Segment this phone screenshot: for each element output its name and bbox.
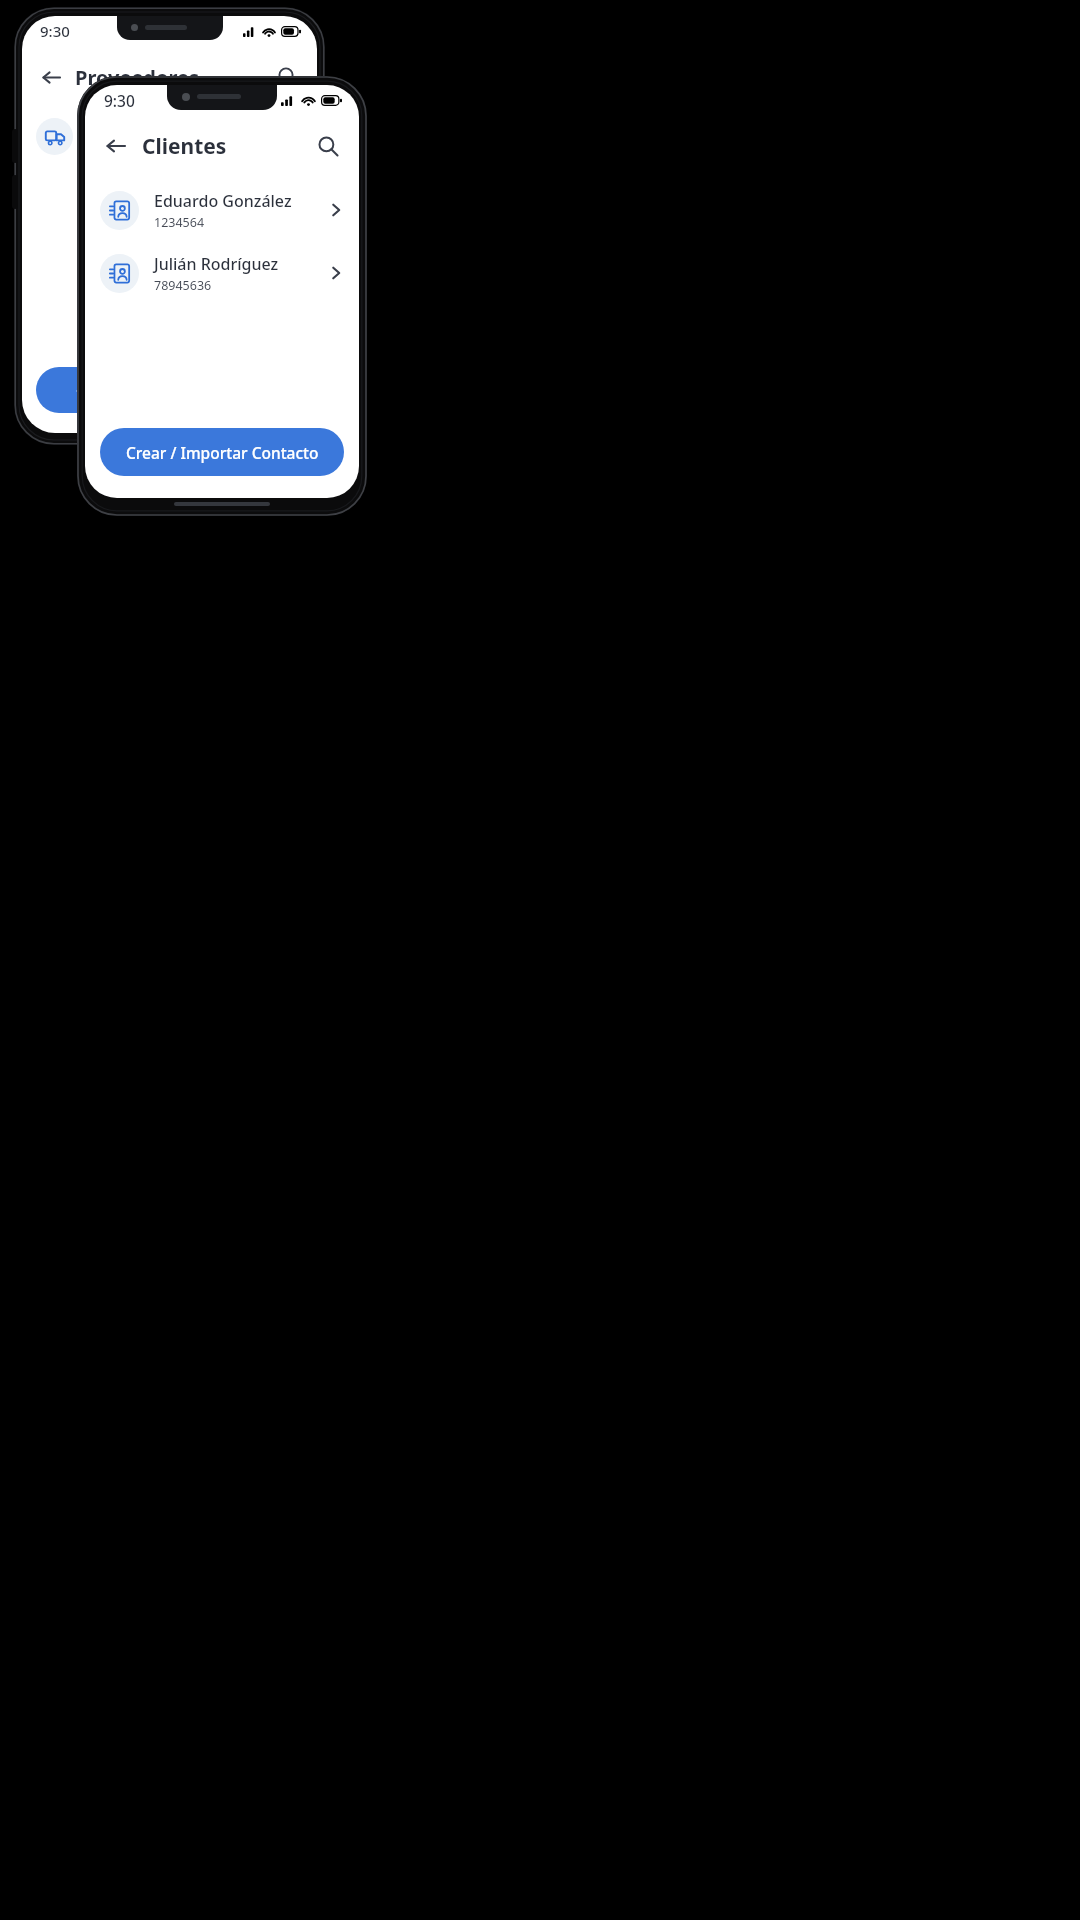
button[interactable]: Search bbox=[273, 62, 303, 92]
staticText: Proveedores bbox=[75, 64, 200, 91]
staticText: 9:30 bbox=[40, 21, 70, 41]
button[interactable]: Eduardo González bbox=[85, 182, 359, 238]
button[interactable]: Crear / Importar Contacto bbox=[100, 428, 344, 476]
staticText: Eduardo González bbox=[154, 190, 292, 212]
staticText: Crear / Importar Contacto bbox=[76, 380, 263, 400]
staticText: 78945636 bbox=[154, 277, 212, 294]
button[interactable]: Julián Rodríguez bbox=[85, 245, 359, 301]
staticText: Julián Rodríguez bbox=[154, 253, 279, 275]
staticText: 78945631 bbox=[88, 139, 143, 155]
staticText: 9:30 bbox=[104, 90, 135, 111]
button[interactable]: Back bbox=[100, 130, 132, 162]
staticText: Crear / Importar Contacto bbox=[126, 442, 319, 463]
staticText: 1234564 bbox=[154, 214, 205, 231]
button[interactable]: Juan López bbox=[22, 108, 317, 164]
button[interactable]: Search bbox=[312, 130, 344, 162]
staticText: Clientes bbox=[142, 132, 227, 161]
button[interactable]: Back bbox=[36, 62, 66, 92]
button[interactable]: Crear / Importar Contacto bbox=[36, 367, 303, 413]
